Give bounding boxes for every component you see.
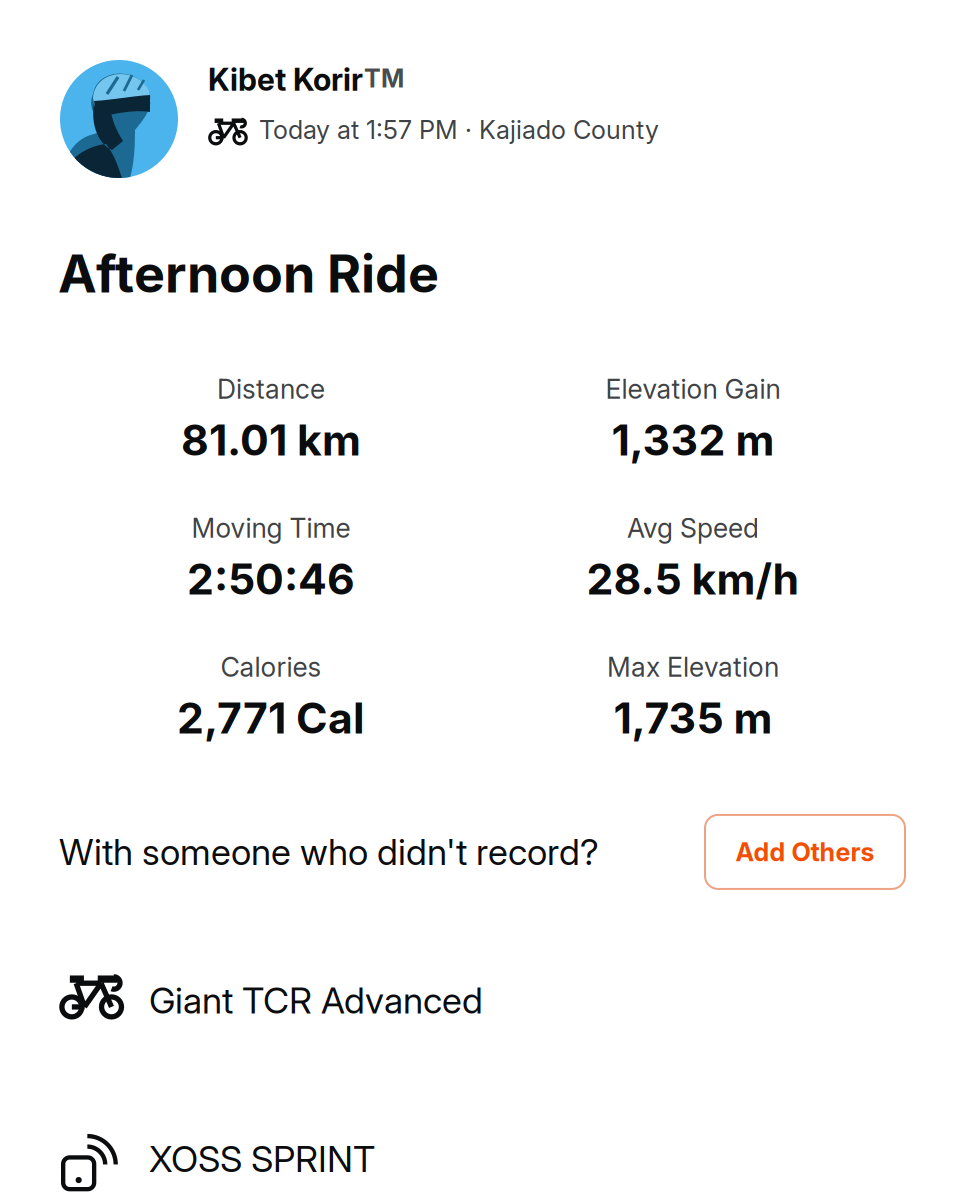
staticText: With someone who didn't record? <box>59 830 599 874</box>
button[interactable]: Giant TCR Advanced <box>0 889 964 1026</box>
staticText: Moving Time <box>191 512 350 544</box>
button[interactable]: Add Others <box>705 815 905 889</box>
staticText: 81.01 km <box>181 414 361 466</box>
staticText: TM <box>364 63 404 94</box>
staticText: Add Others <box>735 837 874 867</box>
staticText: 1,735 m <box>613 692 772 744</box>
staticText: 2:50:46 <box>187 553 355 605</box>
staticText: Calories <box>220 651 321 683</box>
staticText: 2,771 Cal <box>177 692 365 744</box>
staticText: Today at 1:57 PM · Kajiado County <box>259 114 659 145</box>
button[interactable]: XOSS SPRINT <box>0 1026 964 1187</box>
staticText: 1,332 m <box>611 414 774 466</box>
staticText: Kibet Korir <box>208 61 363 98</box>
staticText: Avg Speed <box>627 512 759 544</box>
button[interactable]: Kibet Korir <box>0 0 964 178</box>
staticText: Distance <box>217 373 325 405</box>
staticText: Elevation Gain <box>605 373 780 405</box>
staticText: Giant TCR Advanced <box>149 979 483 1022</box>
staticText: 28.5 km/h <box>586 553 799 605</box>
staticText: XOSS SPRINT <box>149 1137 375 1181</box>
staticText: Max Elevation <box>607 651 779 683</box>
staticText: Afternoon Ride <box>58 242 439 305</box>
